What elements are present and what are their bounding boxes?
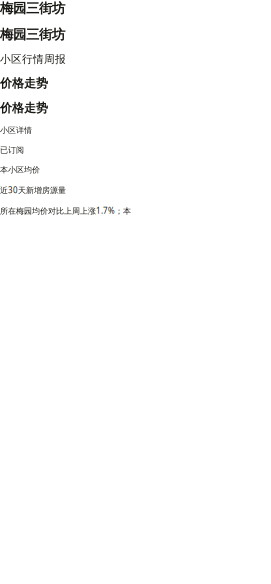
staticText: 价格走势 [0, 76, 48, 91]
staticText: 价格走势 [0, 101, 48, 115]
staticText: 小区详情 [0, 125, 32, 135]
staticText: 梅园三街坊 [0, 0, 65, 16]
staticText: 本小区均价 [0, 165, 40, 175]
staticText: 近30天新增房源量 [0, 185, 66, 195]
staticText: 所在梅园均价对比上周上涨1.7%；本 [0, 205, 131, 216]
staticText: 已订阅 [0, 145, 24, 155]
staticText: 小区行情周报 [0, 53, 66, 66]
staticText: 梅园三街坊 [0, 26, 65, 43]
